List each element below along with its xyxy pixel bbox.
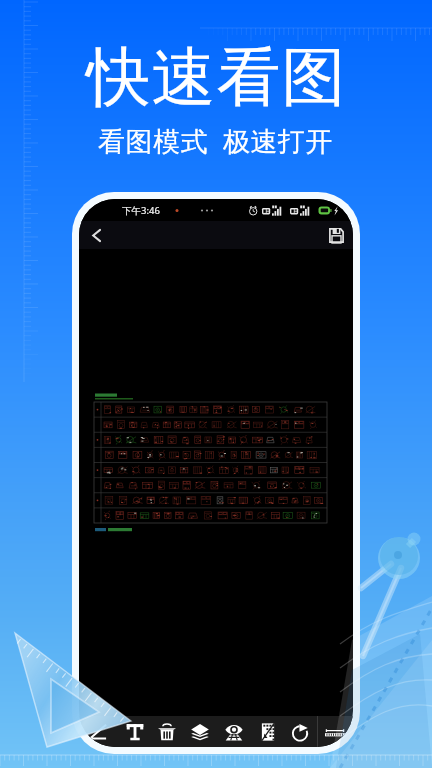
button[interactable]: Save xyxy=(325,224,347,246)
button[interactable]: Back xyxy=(84,223,108,247)
staticText: 看图模式 极速打开 xyxy=(98,122,334,159)
staticText: 下午3:46 xyxy=(122,204,160,217)
button[interactable]: Layers xyxy=(185,716,215,747)
button[interactable]: Snap to grid xyxy=(253,716,283,747)
button[interactable]: Measure angle xyxy=(83,716,113,747)
staticText: 快速看图 xyxy=(86,37,346,118)
button[interactable]: Refresh xyxy=(285,716,315,747)
button[interactable]: View xyxy=(219,716,249,747)
button[interactable]: Delete xyxy=(152,716,182,747)
button[interactable]: Text xyxy=(120,716,150,747)
button[interactable]: Drawing scale xyxy=(325,729,345,737)
